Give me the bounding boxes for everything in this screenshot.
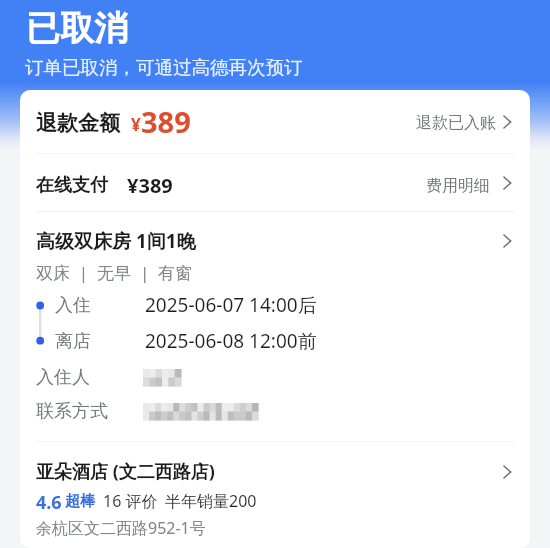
staticText: 2025-06-07 14:00后 — [145, 292, 317, 318]
other: 退款已入账 — [498, 114, 514, 130]
staticText: 4.6 — [36, 490, 62, 514]
staticText: 在线支付 — [36, 174, 108, 197]
button[interactable]: 退款金额 — [20, 90, 530, 153]
staticText: ¥ — [131, 113, 141, 136]
other: 费用明细 — [498, 175, 514, 191]
staticText: 超棒 — [65, 492, 95, 511]
staticText: 退款已入账 — [416, 113, 496, 133]
staticText: 389 — [141, 102, 191, 141]
other: 房型详情 — [498, 233, 514, 249]
staticText: 订单已取消，可通过高德再次预订 — [25, 56, 303, 79]
staticText: 双床 | 无早 | 有窗 — [36, 261, 193, 284]
staticText: 退款金额 — [36, 110, 120, 136]
staticText: ¥389 — [127, 172, 173, 199]
staticText: 余杭区文二西路952-1号 — [36, 517, 206, 539]
staticText: 2025-06-08 12:00前 — [145, 328, 317, 354]
staticText: 高级双床房 1间1晚 — [36, 228, 196, 254]
staticText: 入住人 — [36, 366, 143, 389]
staticText: 联系方式 — [36, 400, 143, 423]
staticText: 已取消 — [26, 7, 128, 50]
other: 酒店详情 — [498, 464, 514, 480]
staticText: 半年销量200 — [165, 490, 257, 512]
staticText: 费用明细 — [426, 176, 490, 196]
button[interactable]: 高级双床房 1间1晚 — [20, 212, 530, 284]
button[interactable]: 亚朵酒店 (文二西路店) — [20, 442, 530, 548]
button[interactable]: 在线支付 — [20, 154, 530, 211]
staticText: 16 评价 — [103, 490, 158, 512]
staticText: 离店 — [55, 330, 145, 353]
staticText: 亚朵酒店 (文二西路店) — [36, 459, 215, 484]
staticText: 入住 — [55, 294, 145, 317]
